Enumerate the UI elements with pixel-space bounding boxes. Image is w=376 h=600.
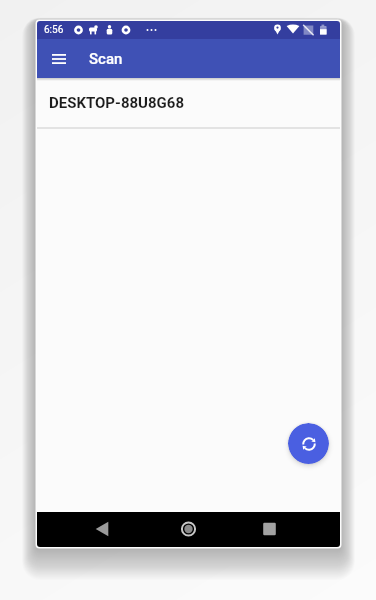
button[interactable] [239, 512, 340, 547]
button[interactable]: DESKTOP-88U8G68 [37, 78, 340, 127]
button[interactable] [37, 512, 138, 547]
staticText: 6:56 [44, 24, 64, 36]
button[interactable] [45, 46, 73, 72]
staticText: Scan [89, 50, 123, 68]
staticText: DESKTOP-88U8G68 [49, 94, 184, 112]
button[interactable] [288, 423, 329, 464]
button[interactable] [138, 512, 239, 547]
